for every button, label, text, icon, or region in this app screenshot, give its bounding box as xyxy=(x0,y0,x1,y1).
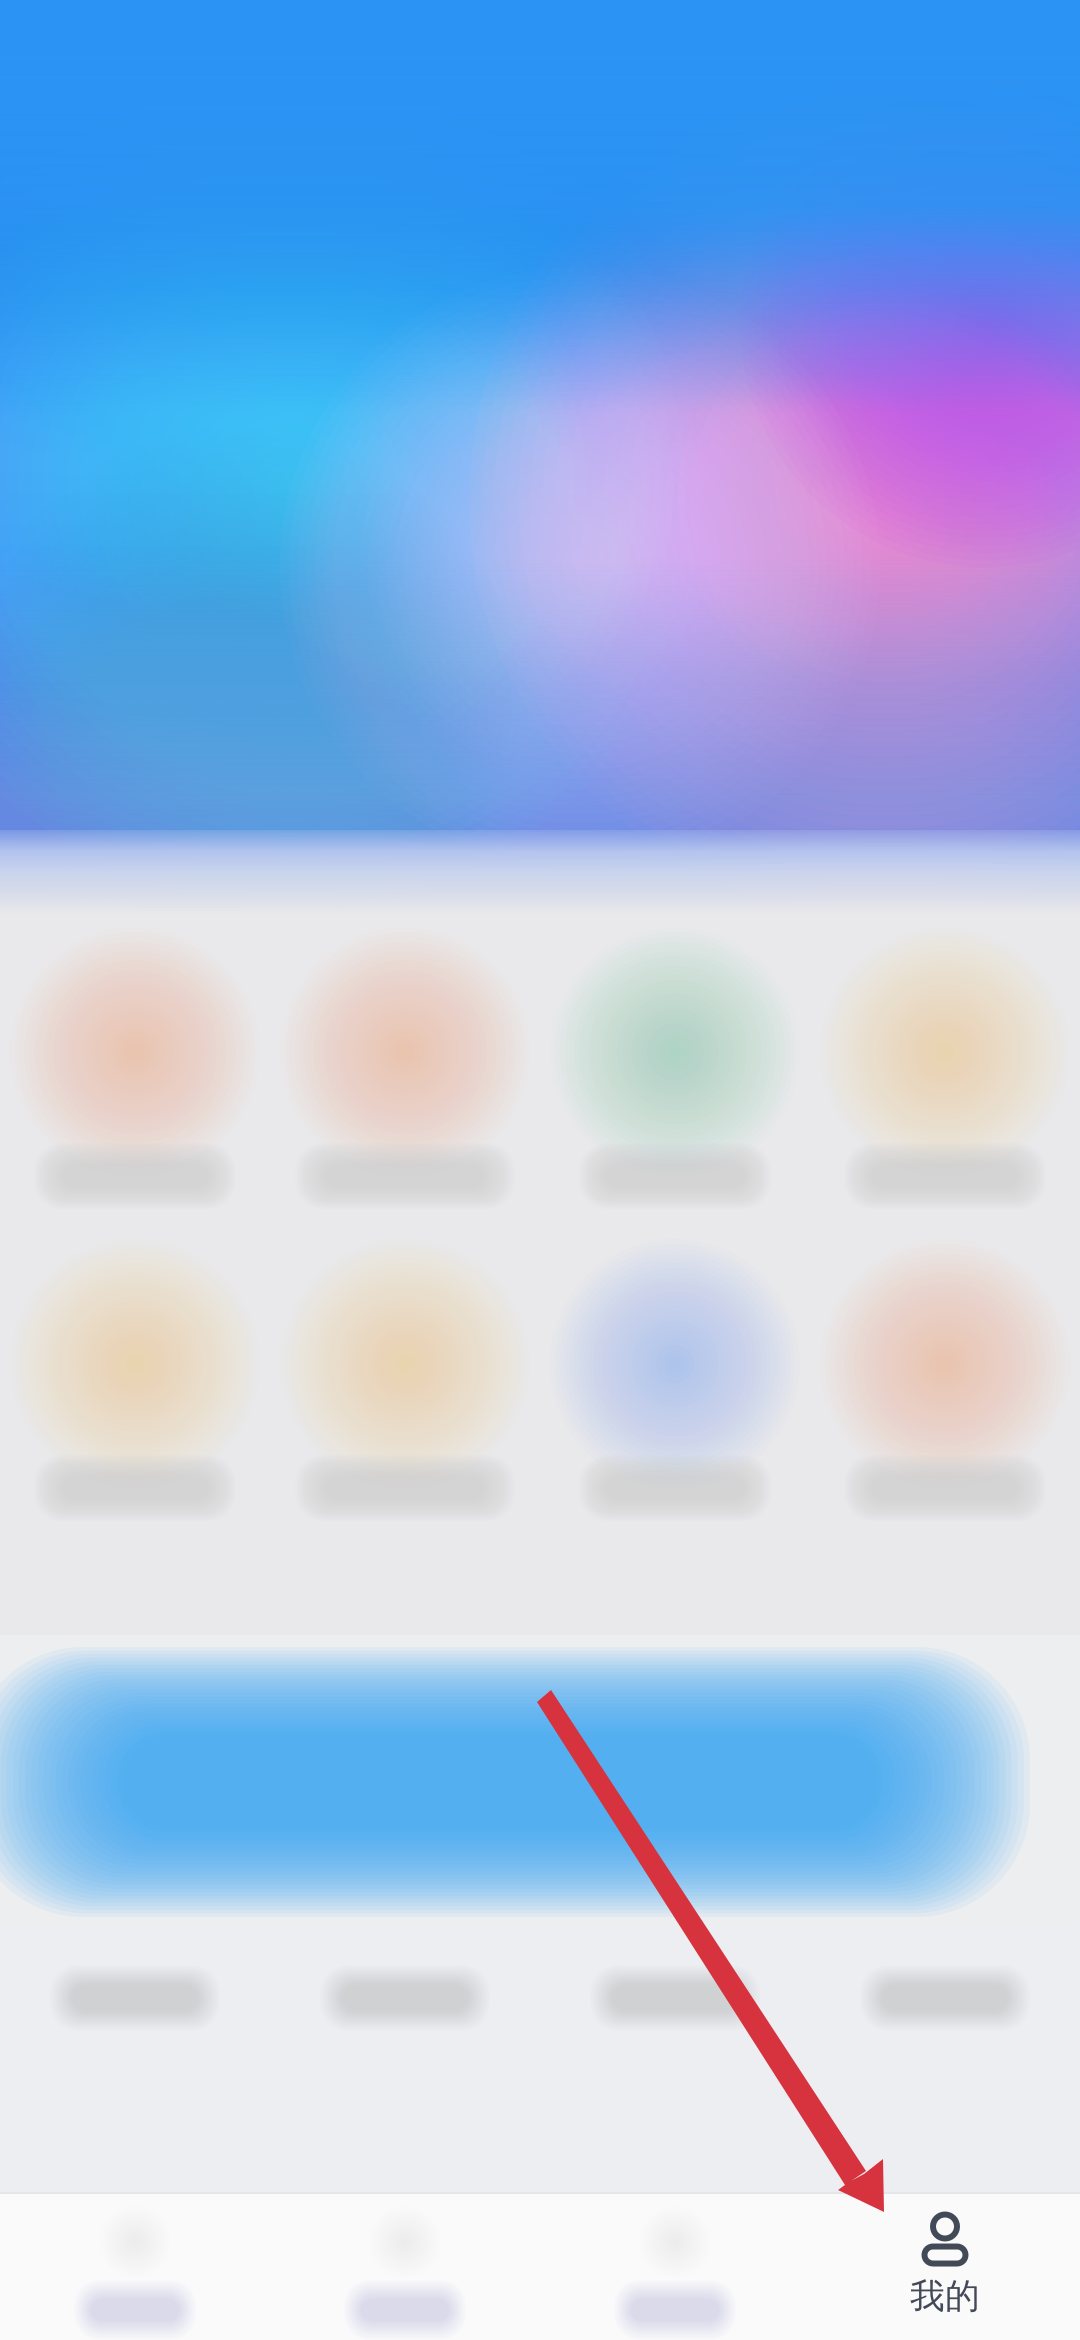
button[interactable]: Service shortcut xyxy=(540,933,810,1245)
button[interactable]: Service shortcut xyxy=(0,933,270,1245)
button[interactable]: Service shortcut xyxy=(270,933,540,1245)
button[interactable]: Service shortcut xyxy=(540,1245,810,1557)
button[interactable]: Tab xyxy=(540,2194,810,2340)
button[interactable]: Service shortcut xyxy=(0,1245,270,1557)
button[interactable]: Service shortcut xyxy=(810,1245,1080,1557)
button[interactable]: Tab xyxy=(270,2194,540,2340)
button[interactable]: 我的 xyxy=(810,2194,1080,2340)
staticText: 我的 xyxy=(910,2275,980,2318)
button[interactable]: Service shortcut xyxy=(810,933,1080,1245)
button[interactable]: Tab xyxy=(0,2194,270,2340)
button[interactable]: Service shortcut xyxy=(270,1245,540,1557)
